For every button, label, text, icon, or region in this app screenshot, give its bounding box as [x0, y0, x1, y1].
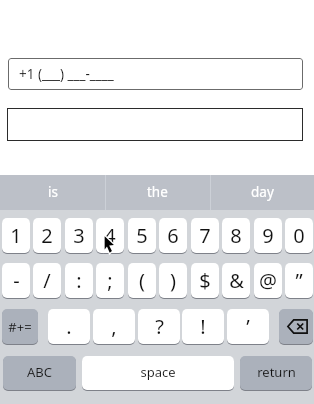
button[interactable]: 9 [254, 218, 282, 253]
button[interactable]: 2 [33, 218, 61, 253]
staticText: ? [155, 313, 164, 340]
button[interactable]: 7 [191, 218, 219, 253]
button[interactable]: ( [128, 263, 156, 298]
button[interactable]: +1 (___) ___-____ [8, 58, 303, 90]
button[interactable]: 1 [2, 218, 30, 253]
staticText: #+= [8, 318, 32, 336]
button[interactable]: day [210, 175, 314, 210]
button[interactable]: 3 [65, 218, 93, 253]
button[interactable]: : [65, 263, 93, 298]
staticText: day [251, 183, 274, 201]
staticText: ( [139, 267, 145, 294]
button[interactable]: return [240, 356, 312, 390]
button[interactable]: / [33, 263, 61, 298]
staticText: 6 [167, 222, 179, 249]
staticText: & [229, 267, 244, 294]
staticText: / [43, 267, 51, 294]
button[interactable]: ? [138, 309, 180, 344]
staticText: 3 [73, 222, 85, 249]
staticText: 5 [136, 222, 148, 249]
staticText: 4 [104, 222, 116, 249]
button[interactable] [7, 108, 303, 141]
button[interactable]: $ [191, 263, 219, 298]
staticText: ; [107, 267, 113, 294]
staticText: ” [295, 267, 303, 294]
staticText: 8 [230, 222, 242, 249]
staticText: ’ [246, 313, 250, 340]
button[interactable]: ) [159, 263, 187, 298]
button[interactable]: #+= [2, 309, 38, 344]
button[interactable]: ; [96, 263, 124, 298]
button[interactable]: . [48, 309, 90, 344]
staticText: ABC [27, 363, 52, 381]
button[interactable]: is [0, 175, 105, 210]
staticText: ) [170, 267, 176, 294]
button[interactable]: , [93, 309, 135, 344]
staticText: . [66, 313, 72, 340]
staticText: , [111, 313, 117, 340]
staticText: 9 [262, 222, 274, 249]
button[interactable]: ’ [227, 309, 269, 344]
staticText: 2 [41, 222, 53, 249]
button[interactable]: & [222, 263, 250, 298]
button[interactable]: ” [285, 263, 313, 298]
button[interactable]: ABC [3, 356, 76, 390]
button[interactable]: space [82, 356, 234, 390]
staticText: 7 [199, 222, 211, 249]
staticText: 0 [293, 222, 305, 249]
button[interactable]: the [105, 175, 210, 210]
staticText: is [48, 183, 58, 201]
staticText: ! [200, 313, 206, 340]
staticText: return [257, 363, 296, 381]
button[interactable]: @ [254, 263, 282, 298]
staticText: the [147, 183, 168, 201]
staticText: @ [259, 267, 277, 294]
button[interactable]: ! [182, 309, 224, 344]
staticText: : [76, 267, 82, 294]
button[interactable]: 4 [96, 218, 124, 253]
staticText: +1 (___) ___-____ [19, 65, 114, 83]
button[interactable]: - [2, 263, 30, 298]
staticText: space [140, 363, 176, 381]
staticText: 1 [10, 222, 22, 249]
button[interactable]: 8 [222, 218, 250, 253]
button[interactable]: Backspace [279, 309, 313, 344]
button[interactable]: 0 [285, 218, 313, 253]
staticText: $ [199, 267, 211, 294]
staticText: - [13, 267, 20, 294]
button[interactable]: 6 [159, 218, 187, 253]
button[interactable]: 5 [128, 218, 156, 253]
